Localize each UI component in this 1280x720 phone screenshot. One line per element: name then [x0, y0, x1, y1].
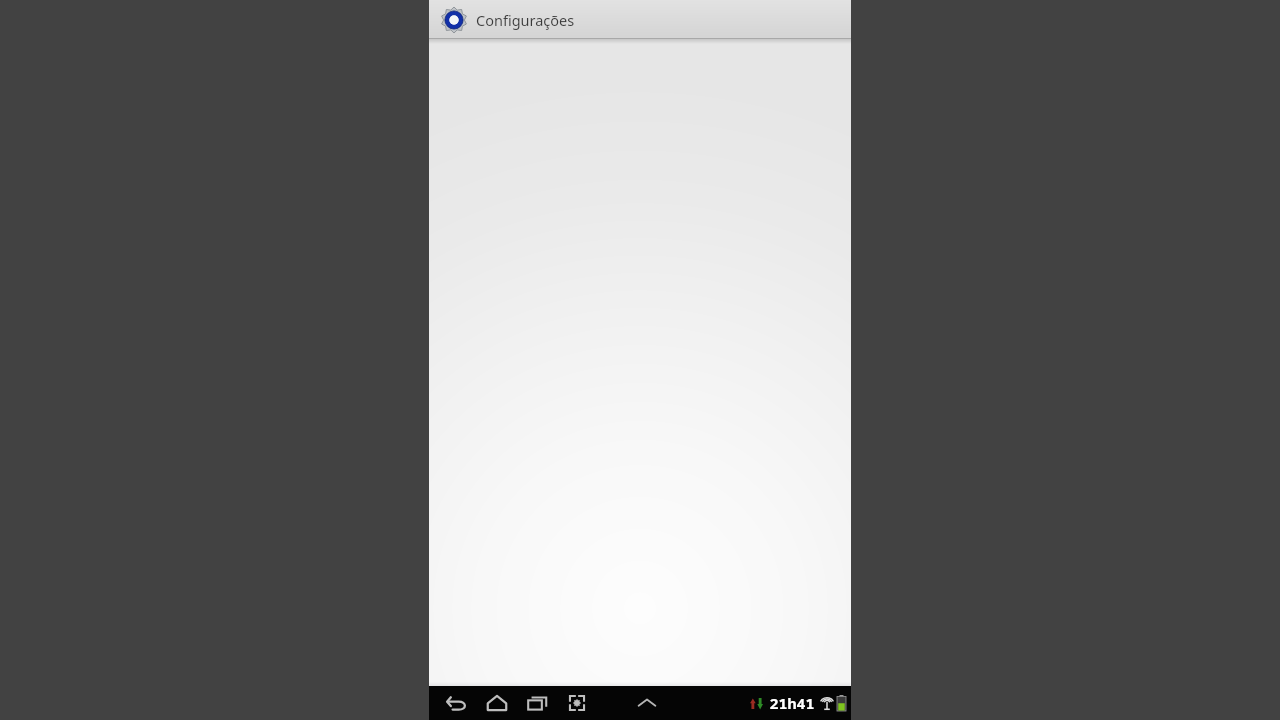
button[interactable]: Configurações — [429, 0, 851, 39]
other: Wi-Fi — [820, 696, 834, 710]
button[interactable]: Expandir — [627, 686, 667, 720]
staticText: Configurações — [476, 10, 575, 30]
button[interactable]: Início — [477, 686, 517, 720]
other: Bateria — [837, 695, 846, 711]
button[interactable]: Captura de tela — [557, 686, 597, 720]
staticText: 21h41 — [769, 693, 815, 713]
other: Sincronização — [750, 696, 763, 711]
other: Configurações — [441, 7, 467, 33]
button[interactable]: Voltar — [437, 686, 477, 720]
button[interactable]: Recentes — [517, 686, 557, 720]
